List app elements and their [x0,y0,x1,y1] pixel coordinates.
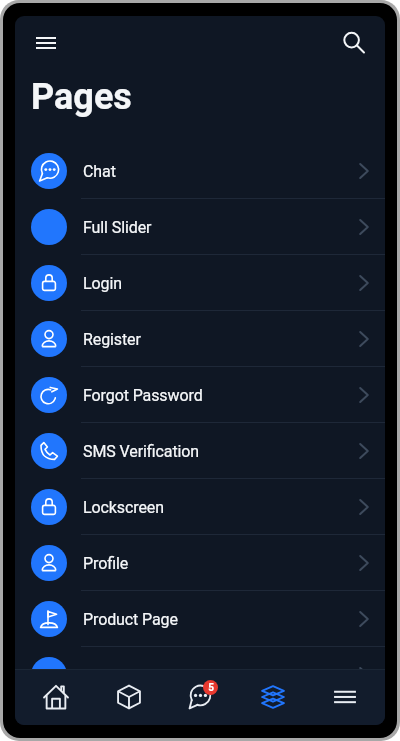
button[interactable]: Chat [15,143,385,199]
staticText: Full Slider [83,218,152,237]
staticText: Register [83,330,141,349]
staticText: Product Page [83,610,178,629]
staticText: Cart [83,666,113,685]
button[interactable]: More [309,669,381,725]
staticText: Profile [83,554,129,573]
button[interactable]: Home [19,669,92,725]
button[interactable]: Forgot Password [15,367,385,423]
staticText: Lockscreen [83,498,164,517]
staticText: Pages [31,76,132,118]
button[interactable]: Register [15,311,385,367]
button[interactable]: Full Slider [15,199,385,255]
staticText: Login [83,274,122,293]
button[interactable]: Lockscreen [15,479,385,535]
staticText: SMS Verification [83,442,200,461]
button[interactable]: Menu [24,21,68,65]
button[interactable]: Profile [15,535,385,591]
button[interactable]: Messages [165,669,237,725]
button[interactable]: Search [334,23,374,63]
button[interactable]: SMS Verification [15,423,385,479]
button[interactable]: Pages [237,669,309,725]
staticText: Forgot Password [83,386,203,405]
button[interactable]: Login [15,255,385,311]
button[interactable]: Cart [15,647,385,703]
staticText: Chat [83,162,116,181]
staticText: 5 [208,682,214,694]
button[interactable]: Product Page [15,591,385,647]
button[interactable]: Products [92,669,165,725]
